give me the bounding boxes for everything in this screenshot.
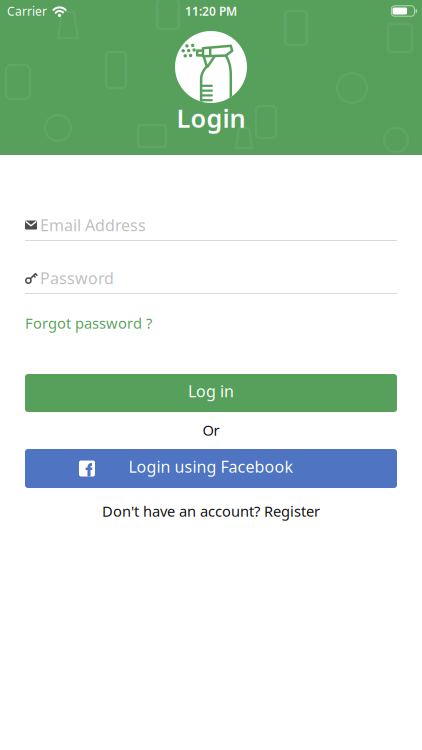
button[interactable]: Login using Facebook — [25, 449, 397, 488]
button[interactable]: Email Address — [25, 215, 397, 241]
button[interactable]: Don't have an account? Register — [25, 502, 397, 520]
staticText: Login — [176, 101, 245, 135]
staticText: Email Address — [40, 214, 146, 236]
staticText: Login using Facebook — [128, 456, 293, 477]
staticText: 11:20 PM — [185, 3, 237, 19]
button[interactable]: Forgot password ? — [25, 316, 152, 334]
staticText: Log in — [188, 380, 234, 402]
staticText: Forgot password ? — [25, 313, 152, 333]
button[interactable]: Log in — [25, 374, 397, 412]
staticText: Password — [40, 267, 114, 289]
staticText: Or — [202, 420, 219, 440]
staticText: Don't have an account? Register — [102, 501, 320, 521]
staticText: Carrier — [7, 3, 47, 19]
button[interactable]: Password — [25, 268, 397, 294]
